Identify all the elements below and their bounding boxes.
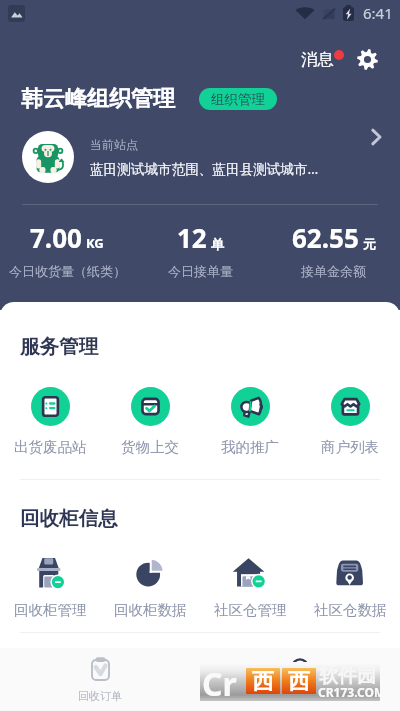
button[interactable]: 我的 [200, 648, 400, 711]
staticText: KG [86, 234, 104, 252]
button[interactable]: 出货废品站 [0, 387, 100, 456]
button[interactable]: 商户列表 [300, 387, 400, 456]
button[interactable]: 货物上交 [100, 387, 200, 456]
staticText: 消息 [301, 49, 334, 70]
staticText: 社区仓数据 [314, 601, 387, 619]
staticText: 我的 [289, 688, 311, 702]
staticText: 蓝田测试城市范围、蓝田县测试城市… [90, 159, 319, 178]
button[interactable]: 7.00 [0, 220, 134, 279]
staticText: 当前站点 [90, 137, 138, 152]
staticText: 西 [288, 668, 310, 694]
staticText: 出货废品站 [14, 438, 87, 456]
staticText: 服务管理 [20, 334, 98, 359]
button[interactable]: 回收订单 [0, 648, 200, 711]
staticText: 6:41 [363, 3, 393, 23]
staticText: 回收柜管理 [14, 601, 87, 619]
button[interactable]: 回收柜数据 [100, 554, 200, 619]
staticText: 62.55 [292, 220, 359, 255]
button[interactable]: 回收柜管理 [0, 554, 100, 619]
staticText: 回收柜信息 [20, 506, 118, 531]
staticText: 回收订单 [78, 689, 122, 703]
button[interactable]: 62.55 [267, 220, 400, 279]
button[interactable]: Settings [353, 45, 382, 74]
staticText: 货物上交 [121, 438, 179, 456]
staticText: 西 [252, 668, 274, 694]
staticText: 我的推广 [221, 438, 279, 456]
staticText: 12 [177, 220, 207, 255]
staticText: 软件园 [319, 664, 376, 688]
button[interactable]: 当前站点 [22, 131, 386, 183]
staticText: 商户列表 [321, 438, 379, 456]
staticText: 韩云峰组织管理 [21, 85, 175, 113]
button[interactable]: 社区仓管理 [200, 554, 300, 619]
staticText: 今日接单量 [168, 263, 233, 279]
staticText: CR173.COM [318, 684, 386, 700]
button[interactable]: 组织管理 [199, 88, 277, 110]
staticText: 回收柜数据 [114, 601, 187, 619]
staticText: 社区仓管理 [214, 601, 287, 619]
button[interactable]: 消息 [297, 45, 348, 74]
staticText: 接单金余额 [301, 263, 366, 279]
button[interactable]: 12 [134, 220, 267, 279]
staticText: 单 [211, 236, 224, 252]
staticText: 组织管理 [211, 91, 265, 108]
staticText: 元 [363, 236, 376, 252]
staticText: 7.00 [30, 220, 82, 255]
button[interactable]: 社区仓数据 [300, 554, 400, 619]
button[interactable]: More [366, 127, 386, 147]
staticText: 今日收货量（纸类） [9, 263, 126, 279]
staticText: Cr [202, 662, 237, 701]
button[interactable]: 我的推广 [200, 387, 300, 456]
